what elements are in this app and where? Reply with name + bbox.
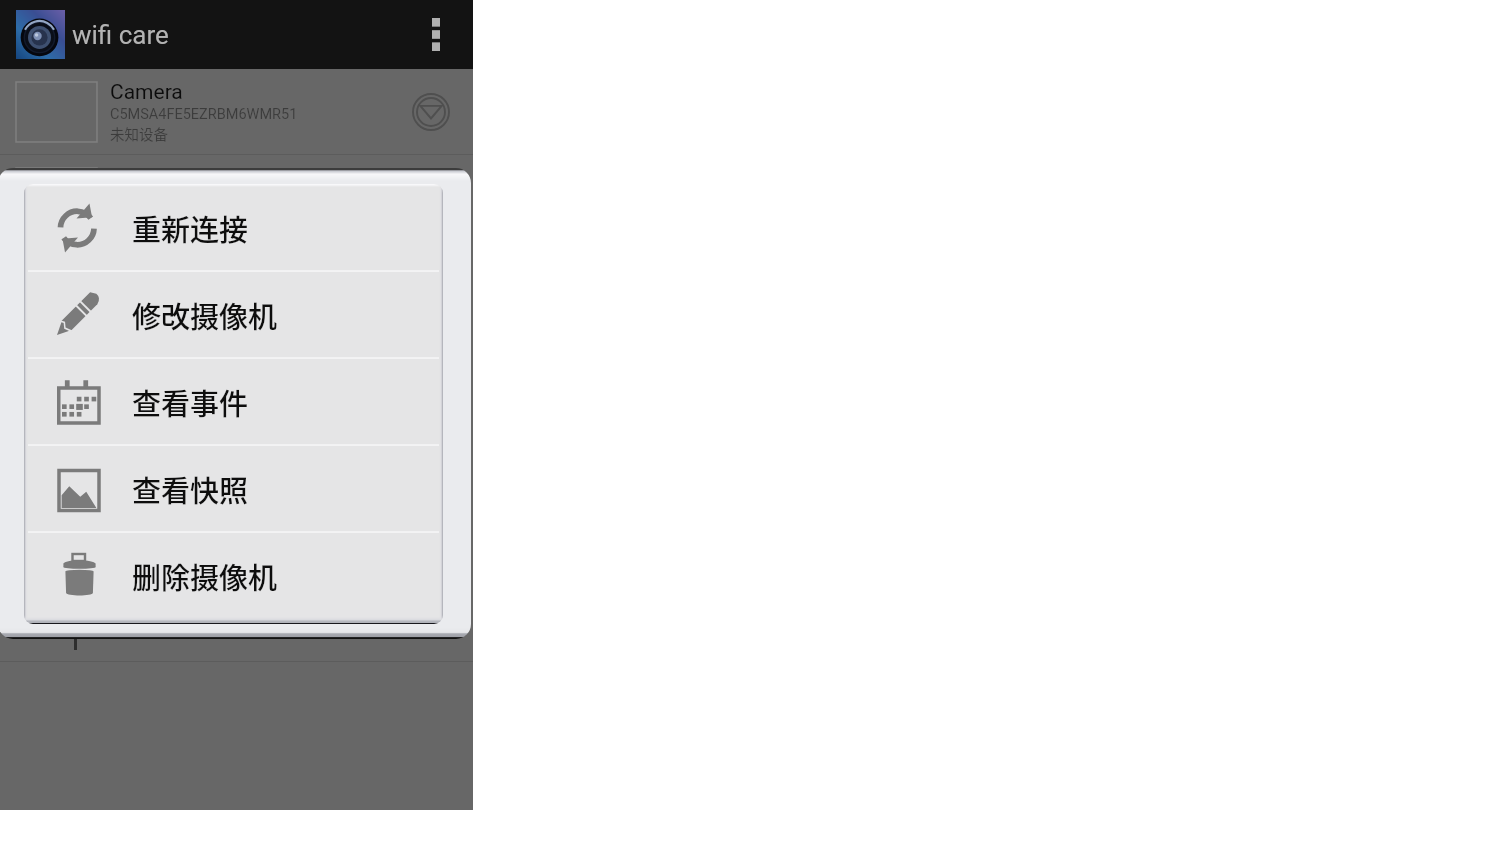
- button[interactable]: Camera: [0, 155, 473, 240]
- button[interactable]: More options: [411, 0, 461, 69]
- button[interactable]: 删除摄像机: [24, 533, 443, 618]
- button[interactable]: 查看快照: [24, 446, 443, 531]
- staticText: wifi care: [72, 20, 169, 50]
- staticText: 修改摄像机: [132, 294, 278, 336]
- staticText: 未知设备: [110, 123, 168, 144]
- staticText: 未知设备: [110, 209, 168, 230]
- button[interactable]: 重新连接: [24, 185, 443, 270]
- staticText: 删除摄像机: [132, 555, 278, 597]
- staticText: Camera: [110, 80, 183, 105]
- button[interactable]: Expand: [403, 170, 459, 226]
- button[interactable]: Expand: [403, 84, 459, 140]
- staticText: 重新连接: [132, 207, 249, 249]
- staticText: C5MSA4FE5EZRBM6WMR51: [110, 106, 298, 123]
- button[interactable]: Camera: [0, 69, 473, 154]
- staticText: Camera: [110, 166, 183, 191]
- staticText: 查看快照: [132, 468, 249, 510]
- staticText: 查看事件: [132, 381, 249, 423]
- button[interactable]: 修改摄像机: [24, 272, 443, 357]
- button[interactable]: 查看事件: [24, 359, 443, 444]
